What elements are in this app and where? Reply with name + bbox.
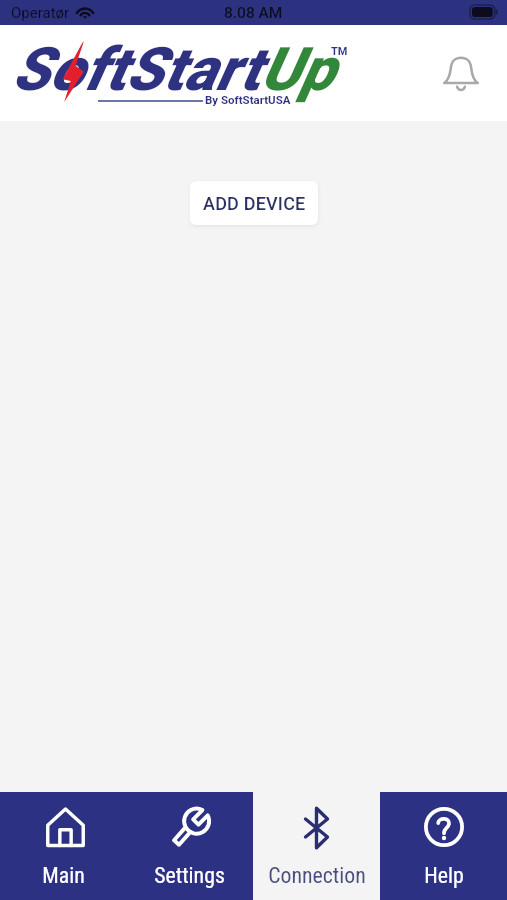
button[interactable]: Notifications — [437, 50, 485, 98]
staticText: Up — [258, 27, 332, 115]
staticText: By SoftStartUSA — [205, 93, 291, 106]
staticText: TM — [331, 45, 348, 58]
staticText: Help — [424, 863, 464, 889]
button[interactable]: Connection — [253, 792, 380, 900]
staticText: Operatør — [11, 4, 70, 22]
button[interactable]: ADD DEVICE — [190, 181, 318, 225]
staticText: Connection — [268, 863, 366, 889]
staticText: Settings — [154, 863, 225, 889]
staticText: SoftStart — [10, 27, 258, 115]
staticText: 8.08 AM — [224, 4, 283, 22]
staticText: Main — [42, 863, 85, 889]
button[interactable]: Help — [380, 792, 507, 900]
staticText: ADD DEVICE — [203, 193, 306, 214]
button[interactable]: Main — [0, 792, 126, 900]
button[interactable]: Settings — [126, 792, 253, 900]
